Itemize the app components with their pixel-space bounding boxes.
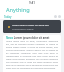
staticText: News Lorem ipsum dolor sit amet [6,36,50,40]
staticText: consectetur adipis [12,27,34,30]
staticText: Anything [6,6,30,14]
button[interactable]: Lorem ipsum dolor sit amet elit [3,20,61,33]
staticText: Lorem ipsum dolor sit amet, consectetur … [6,40,58,70]
staticText: 9:41 [29,1,35,5]
staticText: Today [4,15,12,19]
button[interactable]: Profile [58,15,61,18]
staticText: Lorem ipsum dolor sit amet elit [12,23,49,26]
button[interactable]: Today [4,15,12,19]
button[interactable]: Search [54,15,57,18]
